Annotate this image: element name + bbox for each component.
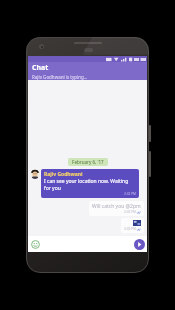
button[interactable]: Send	[134, 239, 145, 250]
button[interactable]: Chat	[28, 62, 147, 80]
staticText: Rajiv Godhwani is typing...	[32, 74, 88, 80]
staticText: Rajiv Godhwani	[44, 171, 83, 178]
staticText: February 6, '17	[72, 159, 104, 165]
staticText: 2:32 PM	[124, 210, 136, 214]
button[interactable]: Contact avatar	[30, 169, 40, 179]
button[interactable]: Emoji	[30, 239, 41, 250]
staticText: Will catch you @2pm	[92, 203, 141, 210]
staticText: 2:33 PM	[124, 227, 136, 231]
button[interactable]: Rajiv Godhwani	[41, 169, 139, 198]
staticText: 2:32 PM	[124, 192, 136, 196]
staticText: Chat	[32, 63, 49, 73]
staticText: I can see your location now. Waiting for…	[44, 178, 136, 192]
button[interactable]: 2:33 PM	[121, 218, 144, 233]
button[interactable]: Will catch you @2pm	[89, 201, 144, 216]
